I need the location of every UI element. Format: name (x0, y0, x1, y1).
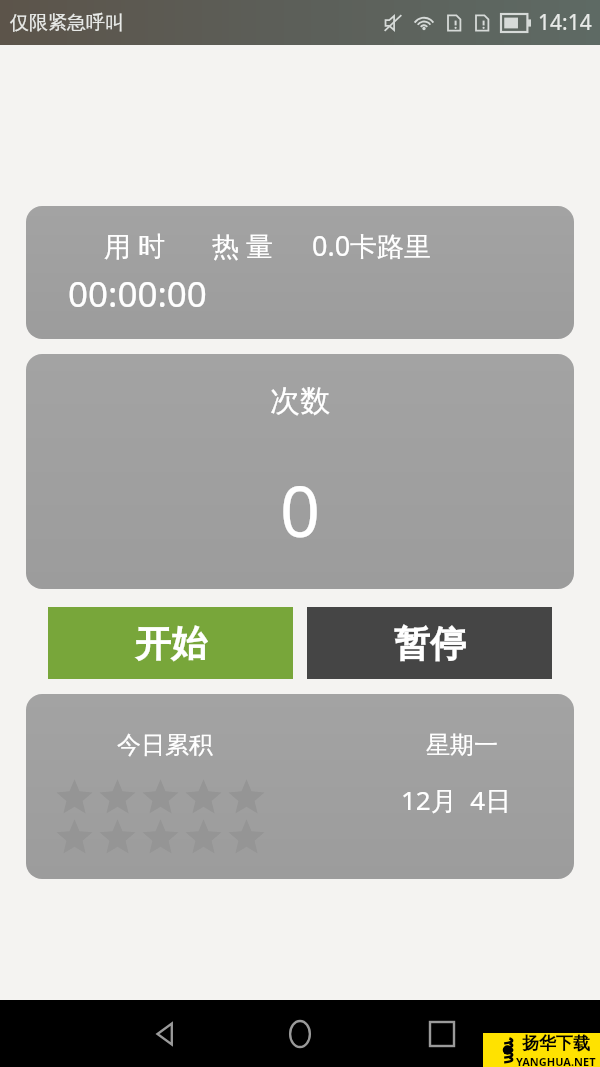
button[interactable]: 次数 (26, 354, 574, 589)
button[interactable]: 开始 (48, 607, 293, 679)
staticText: 0 (280, 462, 321, 557)
button[interactable]: 今日累积 (26, 694, 574, 879)
staticText: 星期一 (426, 730, 498, 760)
staticText: 14:14 (538, 8, 592, 37)
staticText: 0.0卡路里 (312, 227, 432, 264)
staticText: 次数 (270, 382, 330, 420)
button[interactable]: 暂停 (307, 607, 552, 679)
staticText: 暂停 (394, 621, 466, 666)
staticText: 扬华下载 (522, 1033, 590, 1054)
button[interactable]: Recent apps (418, 1010, 466, 1058)
button[interactable]: 用 时 (26, 206, 574, 339)
staticText: 今日累积 (117, 730, 213, 760)
staticText: 仅限紧急呼叫 (10, 11, 124, 35)
staticText: 12月 4日 (401, 782, 512, 818)
button[interactable]: Home (276, 1010, 324, 1058)
button[interactable]: Back (140, 1010, 188, 1058)
staticText: 开始 (135, 621, 207, 666)
staticText: 热 量 (212, 227, 274, 264)
staticText: 用 时 (104, 227, 166, 264)
staticText: YANGHUA.NET (516, 1054, 596, 1067)
staticText: 00:00:00 (68, 270, 207, 318)
